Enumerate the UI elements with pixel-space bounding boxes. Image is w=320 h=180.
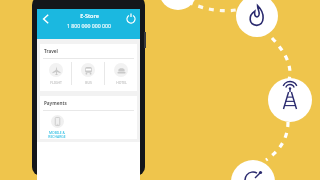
button[interactable]: Back — [39, 12, 53, 26]
staticText: Payments — [44, 100, 67, 106]
staticText: BUS — [85, 80, 92, 85]
staticText: FLIGHT — [50, 80, 62, 85]
staticText: MOBILE & RECHARGE — [48, 130, 66, 139]
button[interactable]: HOTEL — [105, 59, 137, 85]
button[interactable]: BUS — [72, 59, 104, 85]
button[interactable]: MOBILE & RECHARGE — [40, 115, 74, 139]
staticText: HOTEL — [116, 80, 127, 85]
staticText: E-Store — [80, 12, 99, 19]
button[interactable]: FLIGHT — [40, 59, 71, 85]
staticText: 1 800 000 000 000 — [67, 22, 111, 29]
staticText: Travel — [44, 48, 58, 54]
button[interactable]: Refresh — [124, 12, 138, 26]
